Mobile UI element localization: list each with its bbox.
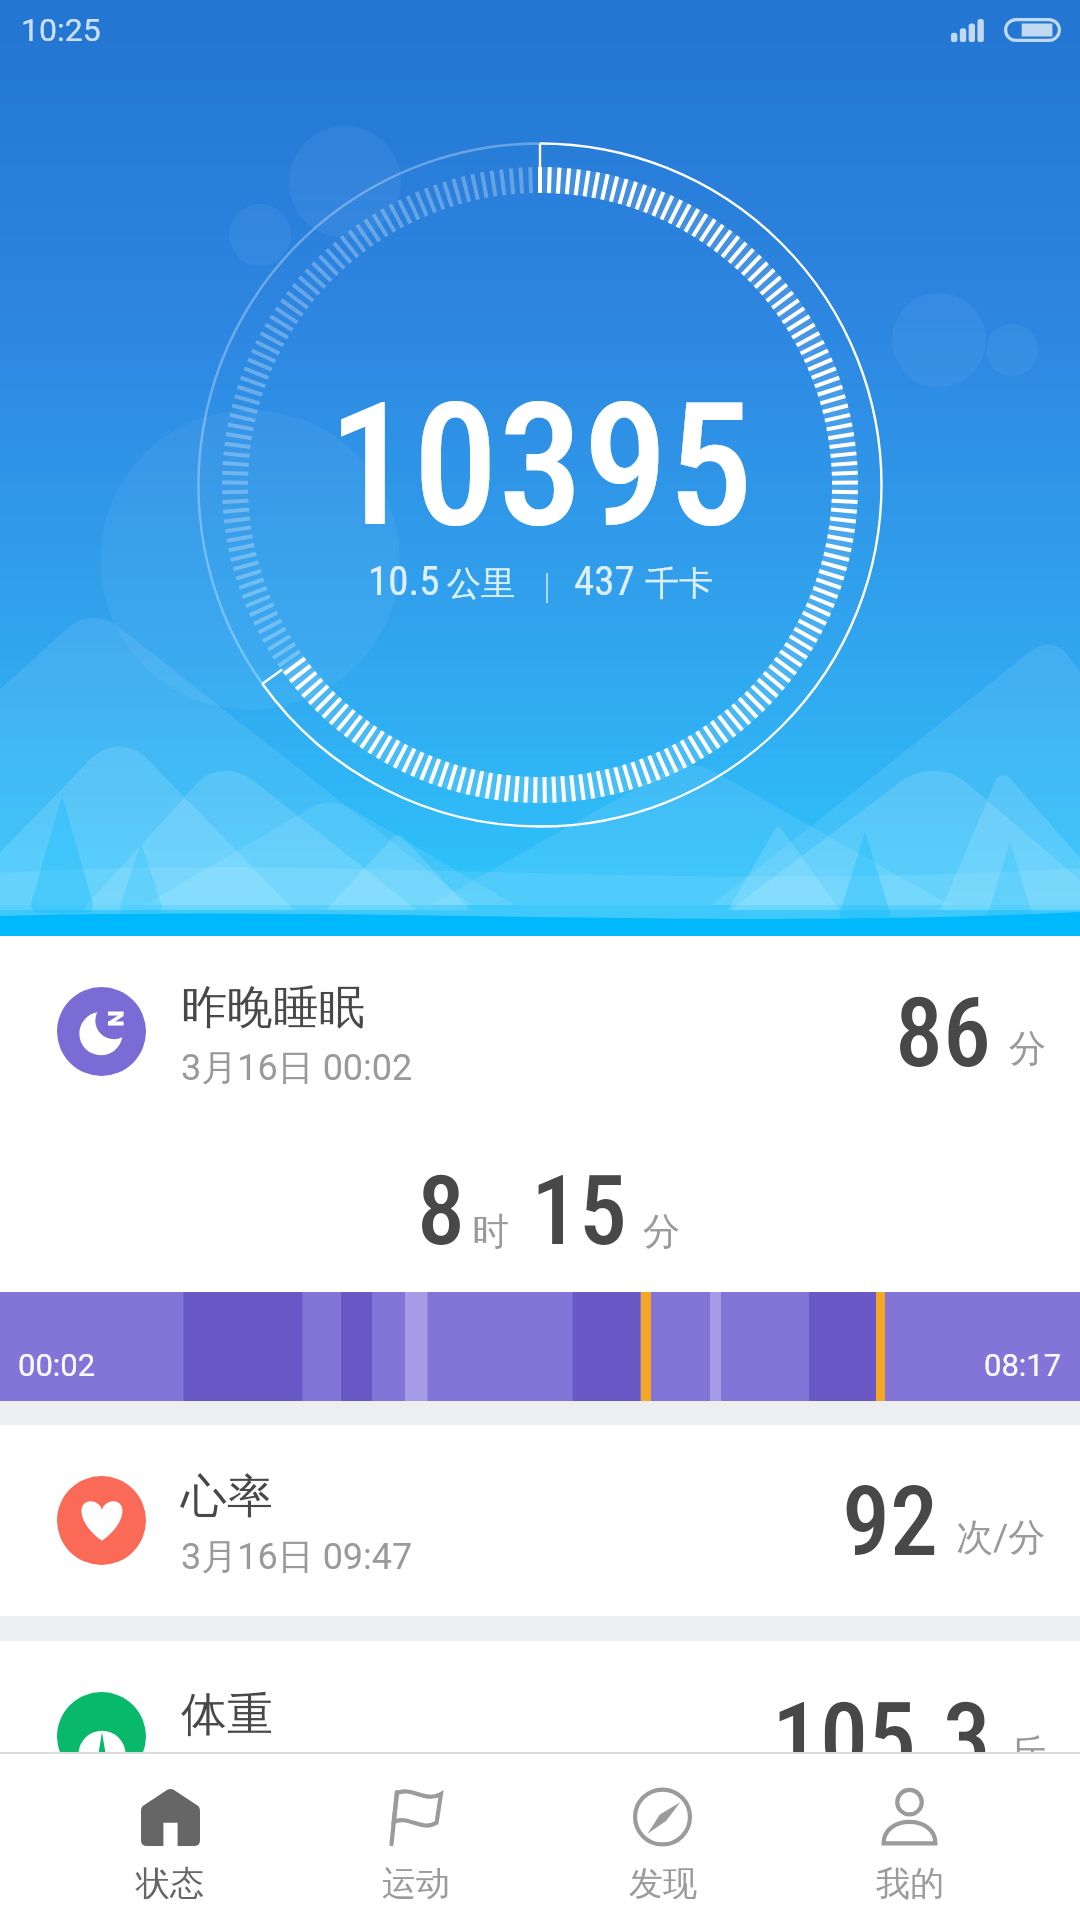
staticText: 心率	[181, 1468, 273, 1526]
button[interactable]: 体重	[0, 1641, 1080, 1832]
staticText: 我的	[876, 1862, 944, 1905]
staticText: 分	[643, 1208, 680, 1255]
button[interactable]: 我的	[786, 1754, 1033, 1905]
button[interactable]: 运动	[293, 1754, 539, 1905]
staticText: 体重	[181, 1686, 273, 1744]
staticText: 105.3	[772, 1682, 991, 1795]
button[interactable]: 心率	[0, 1425, 1080, 1616]
staticText: 次/分	[956, 1514, 1046, 1561]
staticText: 10:25	[21, 11, 101, 49]
staticText: 分	[1009, 1025, 1046, 1072]
staticText: 3月16日 09:47	[181, 1534, 413, 1579]
other: 发现	[633, 1788, 692, 1846]
staticText: 斤	[1009, 1730, 1046, 1777]
staticText: 15	[531, 1155, 627, 1268]
staticText: 437	[574, 557, 635, 605]
button[interactable]: 状态	[47, 1754, 293, 1905]
other: 状态	[141, 1788, 200, 1846]
other: 运动	[389, 1788, 444, 1846]
button[interactable]: 发现	[539, 1754, 786, 1905]
staticText: 状态	[136, 1862, 204, 1905]
staticText: 92	[842, 1466, 938, 1579]
staticText: 3月16日 00:02	[181, 1045, 413, 1090]
staticText: 昨晚睡眠	[181, 979, 365, 1037]
button[interactable]: 昨晚睡眠	[0, 936, 1080, 1126]
staticText: 08:17	[984, 1347, 1062, 1383]
staticText: 运动	[382, 1862, 450, 1905]
staticText: 00:02	[18, 1347, 96, 1383]
staticText: 时	[472, 1208, 509, 1255]
staticText: 86	[895, 977, 991, 1090]
staticText: 8	[417, 1155, 465, 1268]
other: 我的	[881, 1788, 938, 1846]
staticText: 公里	[447, 562, 515, 605]
staticText: 10395	[328, 366, 753, 565]
staticText: 千卡	[645, 562, 713, 605]
staticText: 10.5	[368, 557, 440, 605]
staticText: 发现	[629, 1862, 697, 1905]
